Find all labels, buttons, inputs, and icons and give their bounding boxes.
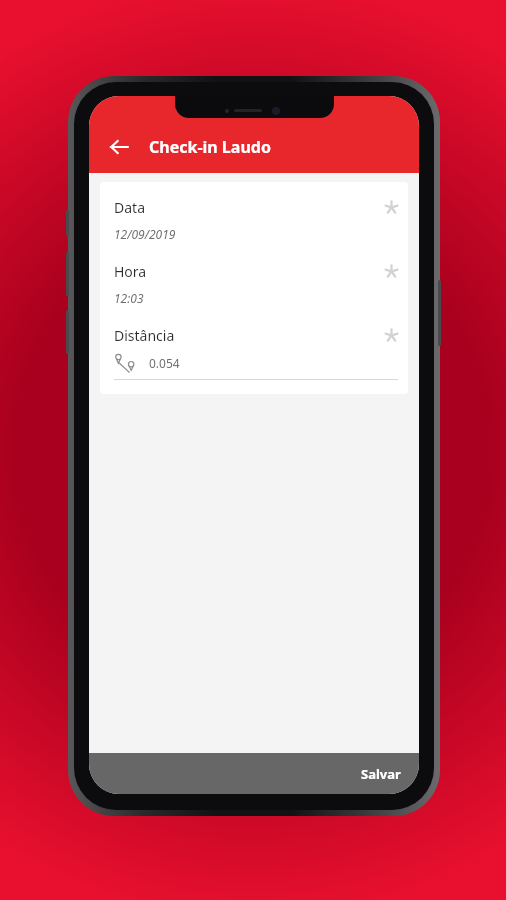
staticText: 0.054: [149, 355, 180, 371]
staticText: 12/09/2019: [114, 226, 176, 242]
staticText: Salvar: [361, 765, 401, 783]
staticText: Distância: [114, 326, 385, 345]
staticText: Data: [114, 198, 385, 217]
button[interactable]: Salvar: [343, 753, 419, 794]
button[interactable]: Back: [99, 127, 139, 167]
staticText: Check-in Laudo: [149, 136, 271, 158]
staticText: Hora: [114, 262, 385, 281]
staticText: 12:03: [114, 290, 144, 306]
